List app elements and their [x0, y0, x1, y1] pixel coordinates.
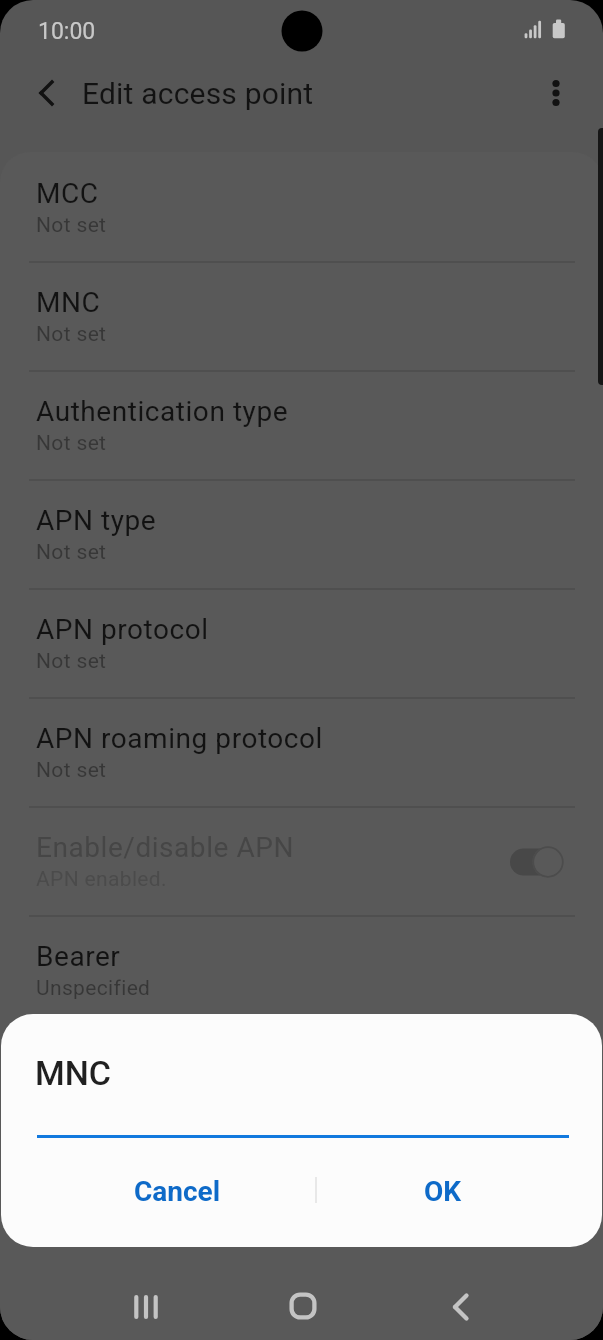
staticText: Not set	[36, 213, 107, 238]
staticText: MVNO value	[36, 1158, 196, 1191]
staticText: Cancel	[134, 1175, 221, 1208]
button[interactable]: APN protocol	[0, 588, 603, 697]
button[interactable]: Back	[425, 1272, 495, 1340]
staticText: Bearer	[36, 940, 121, 973]
button[interactable]: Recent apps	[111, 1272, 181, 1340]
staticText: MCC	[36, 177, 99, 210]
button[interactable]: Enable/disable APN	[0, 806, 603, 915]
staticText: MVNO type	[36, 1049, 183, 1082]
button[interactable]: Enable or disable APN	[502, 839, 572, 885]
staticText: MNC	[35, 1053, 112, 1093]
staticText: 10:00	[38, 18, 96, 45]
button[interactable]: APN type	[0, 479, 603, 588]
staticText: Edit access point	[82, 76, 314, 111]
button[interactable]: MNC	[0, 261, 603, 370]
staticText: APN roaming protocol	[36, 722, 323, 755]
button[interactable]: OK	[318, 1157, 568, 1225]
staticText: Not set	[36, 758, 107, 783]
staticText: APN enabled.	[36, 867, 167, 892]
button[interactable]: More options	[532, 69, 580, 117]
staticText: Unspecified	[36, 976, 151, 1001]
staticText: Not set	[36, 322, 107, 347]
button[interactable]: Navigate up	[25, 69, 73, 117]
button[interactable]: Home	[268, 1271, 338, 1340]
button[interactable]: APN roaming protocol	[0, 697, 603, 806]
staticText: APN type	[36, 504, 157, 537]
button[interactable]: MCC	[0, 152, 603, 261]
staticText: Not set	[36, 431, 107, 456]
staticText: Enable/disable APN	[36, 831, 294, 864]
staticText: OK	[424, 1175, 462, 1208]
button[interactable]: MVNO value	[0, 1133, 603, 1242]
staticText: APN protocol	[36, 613, 209, 646]
staticText: Not set	[36, 540, 107, 565]
button[interactable]: Cancel	[43, 1157, 312, 1225]
staticText: Not set	[36, 649, 107, 674]
staticText: Authentication type	[36, 395, 289, 428]
button[interactable]: MVNO type	[0, 1024, 603, 1133]
button[interactable]: Bearer	[0, 915, 603, 1024]
button[interactable]: Authentication type	[0, 370, 603, 479]
staticText: MNC	[36, 286, 101, 319]
